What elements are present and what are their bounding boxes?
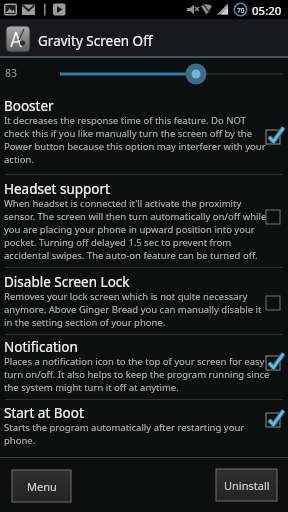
button[interactable] [0, 334, 288, 399]
staticText: Disable Screen Lock [4, 273, 130, 291]
staticText: Menu [27, 479, 57, 494]
button[interactable]: Uninstall [216, 469, 277, 501]
staticText: Headset support [4, 180, 110, 198]
staticText: 70 [237, 6, 245, 15]
button[interactable] [0, 175, 288, 268]
staticText: It decreases the response time of this f… [4, 114, 266, 166]
staticText: Start at Boot [4, 404, 84, 422]
staticText: Notification [4, 338, 78, 356]
button[interactable] [0, 96, 288, 175]
staticText: Removes your lock screen which is not qu… [4, 290, 262, 329]
button[interactable] [0, 58, 288, 96]
staticText: Uninstall [224, 478, 270, 493]
button[interactable] [0, 399, 288, 449]
staticText: Places a notification icon to the top of… [4, 355, 270, 394]
staticText: Starts the program automatically after r… [4, 421, 245, 447]
button[interactable] [0, 268, 288, 334]
button[interactable]: Menu [12, 470, 71, 502]
staticText: 83 [5, 66, 18, 80]
staticText: Gravity Screen Off [38, 32, 153, 50]
staticText: 05:20 [252, 3, 282, 19]
staticText: Booster [4, 97, 54, 115]
staticText: When headset is connected it'll activate… [4, 197, 267, 262]
